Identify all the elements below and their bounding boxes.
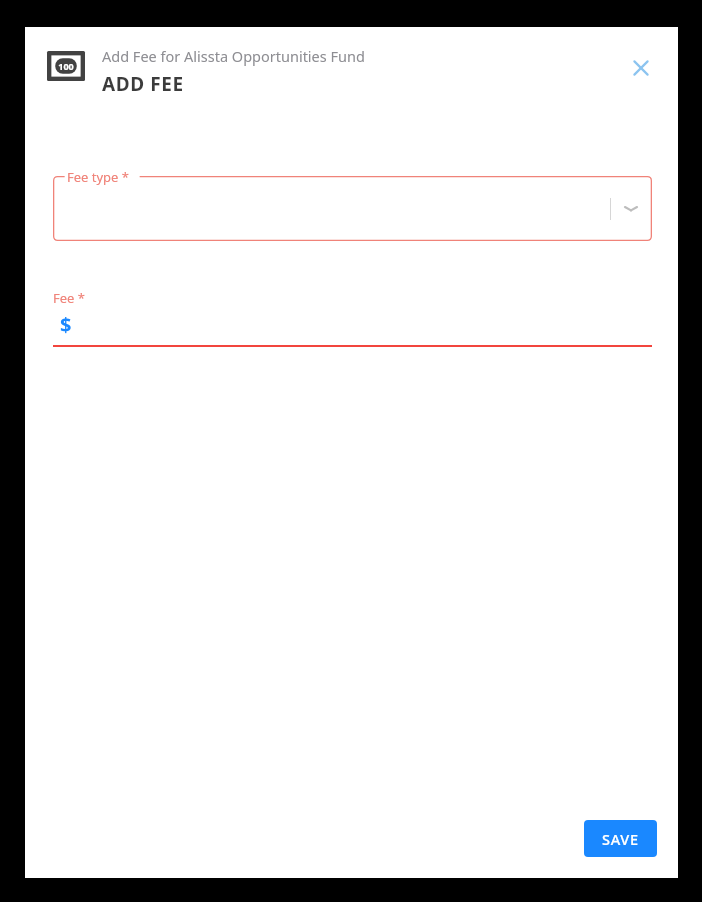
staticText: 100 bbox=[58, 60, 74, 72]
button[interactable]: Fee * bbox=[53, 289, 652, 347]
staticText: Fee * bbox=[53, 289, 85, 307]
staticText: Add Fee for Alissta Opportunities Fund bbox=[102, 46, 365, 66]
staticText: Fee type * bbox=[67, 168, 129, 186]
button[interactable]: SAVE bbox=[584, 820, 657, 857]
button[interactable]: Fee type * bbox=[53, 176, 652, 241]
staticText: $ bbox=[60, 311, 72, 338]
staticText: ADD FEE bbox=[102, 71, 184, 97]
staticText: SAVE bbox=[602, 829, 639, 849]
button[interactable]: Close bbox=[621, 48, 661, 88]
